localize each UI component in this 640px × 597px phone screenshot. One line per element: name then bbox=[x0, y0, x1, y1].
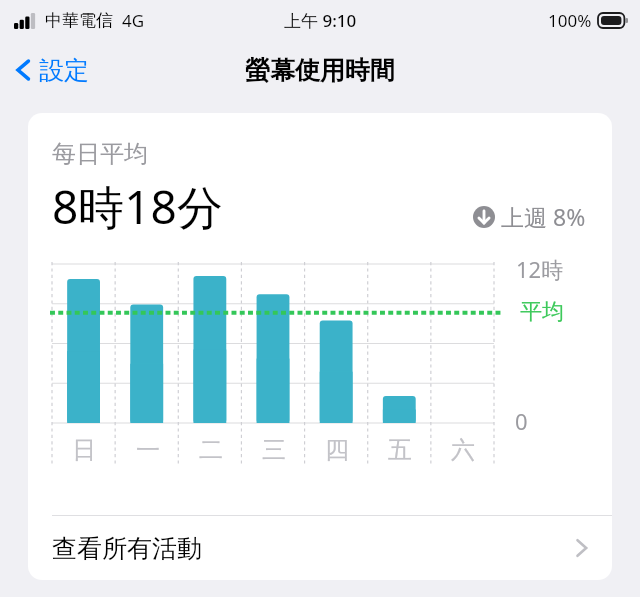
staticText: 一 bbox=[136, 435, 160, 465]
staticText: 上週 8% bbox=[501, 201, 586, 232]
staticText: 0 bbox=[515, 406, 528, 436]
staticText: 上午 9:10 bbox=[284, 9, 357, 32]
staticText: 100% bbox=[548, 9, 592, 32]
staticText: 設定 bbox=[39, 55, 89, 86]
staticText: 螢幕使用時間 bbox=[245, 55, 395, 86]
staticText: 每日平均 bbox=[52, 139, 148, 169]
staticText: 三 bbox=[262, 435, 286, 465]
staticText: 六 bbox=[451, 435, 475, 465]
staticText: 二 bbox=[199, 435, 223, 465]
staticText: 四 bbox=[325, 435, 349, 465]
staticText: 中華電信 bbox=[45, 10, 113, 31]
staticText: 8時18分 bbox=[52, 175, 223, 238]
staticText: 五 bbox=[388, 435, 412, 465]
staticText: 日 bbox=[72, 435, 96, 465]
button[interactable]: 設定 bbox=[0, 48, 99, 92]
staticText: 查看所有活動 bbox=[52, 533, 202, 564]
staticText: 4G bbox=[122, 9, 145, 32]
other: Decreased from last week bbox=[473, 206, 495, 228]
button[interactable]: 查看所有活動 bbox=[28, 516, 612, 580]
staticText: 12時 bbox=[516, 254, 564, 284]
staticText: 平均 bbox=[520, 298, 564, 326]
